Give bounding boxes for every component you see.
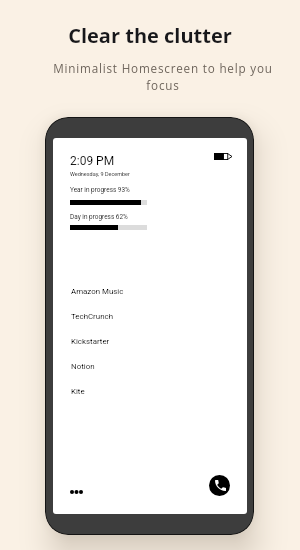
staticText: Amazon Music (71, 287, 124, 296)
button[interactable]: Amazon Music (53, 279, 247, 304)
button[interactable]: Notion (53, 354, 247, 379)
button[interactable]: Phone (209, 475, 230, 496)
staticText: Kite (71, 387, 85, 396)
staticText: Wednesday, 9 December (70, 171, 130, 177)
staticText: Kickstarter (71, 337, 110, 346)
staticText: Day in progress 62% (70, 213, 128, 221)
staticText: Clear the clutter (68, 22, 232, 49)
button[interactable]: TechCrunch (53, 304, 247, 329)
button[interactable]: Kite (53, 379, 247, 404)
staticText: TechCrunch (71, 312, 113, 321)
staticText: Minimalist Homescreen to help you focus (52, 60, 274, 94)
staticText: Year in progress 93% (70, 186, 130, 194)
staticText: 2:09 PM (70, 154, 115, 168)
staticText: Notion (71, 362, 95, 371)
button[interactable]: More apps (61, 480, 91, 504)
other: Battery (214, 153, 232, 160)
button[interactable]: Kickstarter (53, 329, 247, 354)
